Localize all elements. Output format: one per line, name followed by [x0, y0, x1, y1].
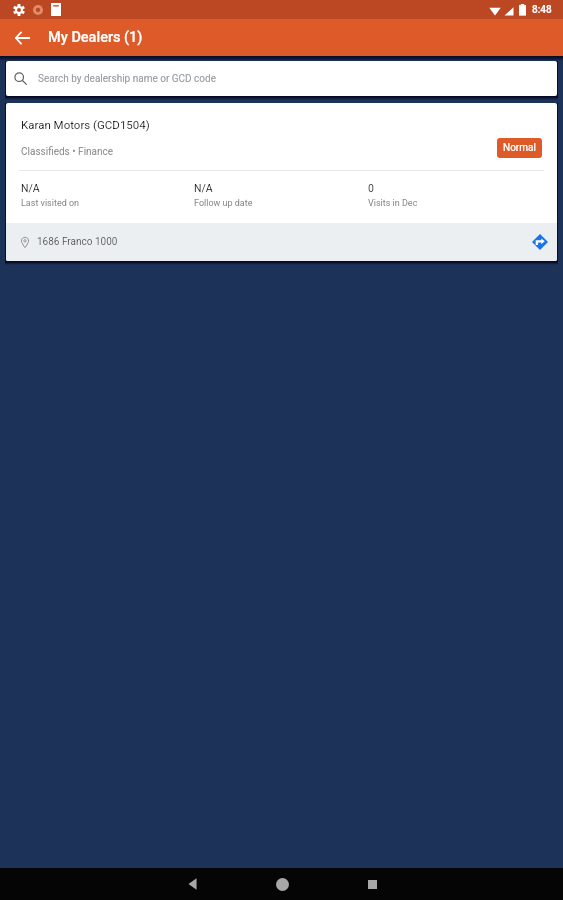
button[interactable]: Navigate up — [6, 22, 38, 54]
staticText: Last visited on — [21, 198, 80, 209]
staticText: 1686 Franco 1000 — [37, 236, 118, 248]
staticText: Search by dealership name or GCD code — [38, 73, 217, 85]
staticText: Follow up date — [194, 198, 253, 209]
staticText: N/A — [194, 182, 213, 194]
button[interactable]: Home — [237, 868, 327, 900]
staticText: 8:48 — [532, 4, 552, 16]
staticText: 0 — [368, 182, 374, 194]
button[interactable]: Recent apps — [327, 868, 417, 900]
staticText: Classifieds • Finance — [21, 146, 114, 158]
button[interactable]: Directions — [529, 231, 551, 253]
button[interactable]: Back — [147, 868, 237, 900]
button[interactable]: Search by dealership name or GCD code — [6, 61, 557, 96]
button[interactable]: Karan Motors (GCD1504) — [6, 103, 557, 261]
staticText: Karan Motors (GCD1504) — [21, 118, 150, 131]
staticText: My Dealers (1) — [48, 29, 143, 46]
button[interactable]: Normal — [497, 138, 542, 158]
staticText: N/A — [21, 182, 40, 194]
staticText: Normal — [503, 142, 536, 154]
staticText: Visits in Dec — [368, 198, 418, 209]
